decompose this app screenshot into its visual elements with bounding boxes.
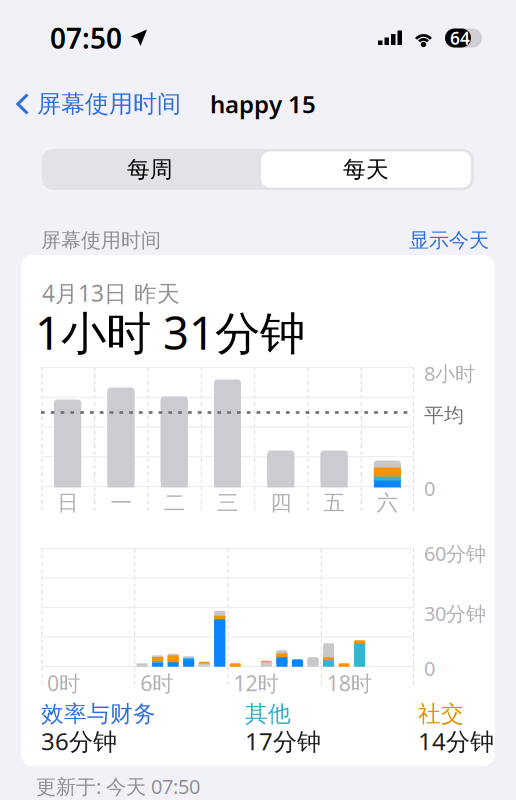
staticText: 36分钟 (41, 725, 117, 757)
staticText: 效率与财务 (41, 700, 156, 728)
staticText: 0 (424, 475, 435, 502)
button[interactable]: 效率与财务 (41, 703, 156, 753)
staticText: 五 (324, 490, 345, 516)
staticText: 18时 (327, 669, 372, 697)
staticText: 17分钟 (245, 725, 321, 757)
staticText: 0 (424, 655, 435, 682)
staticText: 平均 (424, 403, 464, 428)
staticText: 更新于: 今天 07:50 (36, 773, 200, 800)
staticText: 每周 (127, 156, 173, 183)
staticText: 屏幕使用时间 (41, 228, 161, 253)
button[interactable]: 每天 (258, 149, 474, 190)
staticText: 其他 (245, 700, 291, 728)
staticText: 12时 (233, 669, 278, 697)
staticText: 14分钟 (418, 725, 494, 757)
staticText: 社交 (418, 700, 464, 728)
button[interactable]: 每周 (42, 149, 258, 190)
button[interactable]: 社交 (418, 703, 494, 753)
staticText: 二 (164, 490, 185, 516)
staticText: 64 (450, 26, 470, 49)
staticText: 6时 (140, 669, 173, 697)
staticText: 每天 (343, 156, 389, 183)
staticText: 1小时 31分钟 (35, 302, 305, 362)
staticText: 07:50 (50, 19, 122, 57)
staticText: 显示今天 (409, 228, 489, 253)
staticText: 屏幕使用时间 (37, 89, 181, 119)
staticText: 4月13日 昨天 (42, 278, 180, 308)
button[interactable]: 显示今天 (409, 228, 489, 253)
staticText: 日 (57, 490, 78, 516)
staticText: 8小时 (424, 360, 475, 387)
button[interactable]: 屏幕使用时间 (0, 76, 189, 132)
staticText: 60分钟 (424, 540, 486, 567)
button[interactable]: 其他 (245, 703, 321, 753)
staticText: happy 15 (210, 88, 316, 120)
staticText: 四 (270, 490, 291, 516)
staticText: 30分钟 (424, 600, 486, 627)
staticText: 六 (377, 490, 398, 516)
staticText: 0时 (47, 669, 80, 697)
staticText: 一 (110, 490, 131, 516)
staticText: 三 (217, 490, 238, 516)
